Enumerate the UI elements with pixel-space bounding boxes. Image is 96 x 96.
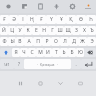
button[interactable]: И bbox=[44, 48, 52, 57]
button[interactable]: С bbox=[28, 48, 36, 57]
staticText: А bbox=[27, 38, 31, 45]
button[interactable]: Ц bbox=[8, 26, 16, 35]
button[interactable]: Я bbox=[12, 48, 20, 57]
button[interactable]: У bbox=[16, 26, 24, 35]
staticText: Е bbox=[35, 27, 38, 34]
staticText: Ә bbox=[12, 16, 16, 23]
button[interactable]: Ч bbox=[20, 48, 28, 57]
button[interactable]: !#1 bbox=[0, 59, 14, 69]
staticText: У bbox=[18, 27, 22, 34]
button[interactable]: Ь bbox=[60, 48, 68, 57]
button[interactable]: К bbox=[24, 26, 32, 35]
staticText: Д bbox=[72, 38, 76, 45]
button[interactable]: ? bbox=[14, 59, 24, 69]
button[interactable]: А bbox=[24, 37, 33, 46]
button[interactable]: Ғ bbox=[0, 15, 9, 24]
button[interactable]: Ю bbox=[76, 48, 84, 57]
button[interactable]: Ө bbox=[76, 15, 86, 24]
staticText: Ц bbox=[10, 27, 14, 34]
button[interactable]: Д bbox=[69, 37, 78, 46]
staticText: С bbox=[30, 49, 34, 56]
staticText: Ү bbox=[50, 16, 53, 23]
button[interactable]: Home bbox=[30, 71, 50, 96]
button[interactable]: Settings bbox=[64, 0, 80, 13]
staticText: Щ bbox=[65, 27, 71, 34]
staticText: Н bbox=[42, 27, 46, 34]
button[interactable]: Б bbox=[68, 48, 76, 57]
staticText: Э bbox=[90, 38, 94, 45]
button[interactable]: Н bbox=[40, 26, 48, 35]
staticText: Ю bbox=[78, 49, 83, 56]
staticText: Г bbox=[51, 27, 54, 34]
staticText: Б bbox=[70, 49, 74, 56]
button[interactable]: Stickers bbox=[16, 0, 32, 13]
button[interactable]: Switch keyboard bbox=[70, 71, 90, 96]
staticText: І bbox=[22, 16, 24, 23]
staticText: Ғ bbox=[40, 16, 43, 23]
staticText: Л bbox=[63, 38, 67, 45]
staticText: Ө bbox=[79, 16, 83, 23]
button[interactable]: Ң bbox=[27, 15, 36, 24]
button[interactable]: Э bbox=[87, 37, 96, 46]
button[interactable]: Л bbox=[60, 37, 69, 46]
button[interactable]: Enter bbox=[81, 59, 96, 69]
staticText: Р bbox=[45, 38, 49, 45]
staticText: Һ bbox=[89, 16, 93, 23]
button[interactable]: Emoji bbox=[0, 0, 16, 13]
staticText: И bbox=[46, 49, 50, 56]
button[interactable]: Щ bbox=[64, 26, 72, 35]
staticText: Ң bbox=[30, 16, 34, 23]
button[interactable]: Ф bbox=[0, 37, 8, 46]
staticText: К bbox=[26, 27, 30, 34]
button[interactable]: Ш bbox=[56, 26, 64, 35]
staticText: Қ bbox=[69, 16, 73, 23]
button[interactable]: П bbox=[33, 37, 42, 46]
button[interactable] bbox=[80, 0, 96, 13]
staticText: Ы bbox=[10, 38, 15, 45]
button[interactable]: З bbox=[72, 26, 80, 35]
button[interactable]: Backspace bbox=[84, 48, 96, 57]
staticText: !#1 bbox=[4, 62, 10, 67]
staticText: Ф bbox=[2, 38, 7, 45]
staticText: В bbox=[18, 38, 22, 45]
button[interactable]: Ү bbox=[46, 15, 56, 24]
staticText: Ж bbox=[80, 38, 85, 45]
button[interactable]: Hide keyboard bbox=[50, 71, 70, 96]
button[interactable]: Г bbox=[48, 26, 56, 35]
staticText: Х bbox=[83, 27, 86, 34]
staticText: . bbox=[75, 61, 77, 67]
button[interactable]: М bbox=[36, 48, 44, 57]
button[interactable]: Ы bbox=[8, 37, 16, 46]
button[interactable]: Р bbox=[42, 37, 51, 46]
button[interactable]: Ж bbox=[78, 37, 87, 46]
button[interactable]: І bbox=[18, 15, 27, 24]
staticText: Я bbox=[14, 49, 18, 56]
staticText: Ч bbox=[22, 49, 26, 56]
staticText: Ш bbox=[57, 27, 63, 34]
button[interactable]: Clipboard bbox=[32, 0, 48, 13]
button[interactable]: Т bbox=[52, 48, 60, 57]
button[interactable]: Recents bbox=[11, 71, 30, 96]
staticText: П bbox=[36, 38, 40, 45]
button[interactable]: Ъ bbox=[88, 26, 96, 35]
button[interactable]: Қазақша bbox=[24, 59, 71, 69]
staticText: Ғ bbox=[3, 16, 6, 23]
button[interactable]: Ғ bbox=[36, 15, 46, 24]
button[interactable]: Й bbox=[0, 26, 8, 35]
button[interactable]: В bbox=[16, 37, 24, 46]
button[interactable]: Ә bbox=[9, 15, 18, 24]
button[interactable]: Е bbox=[32, 26, 40, 35]
staticText: М bbox=[38, 49, 43, 56]
staticText: ? bbox=[18, 61, 20, 67]
button[interactable]: Х bbox=[80, 26, 88, 35]
button[interactable]: Ұ bbox=[56, 15, 66, 24]
button[interactable]: Shift bbox=[0, 48, 12, 57]
staticText: Ъ bbox=[90, 27, 94, 34]
button[interactable]: О bbox=[51, 37, 60, 46]
button[interactable]: Һ bbox=[86, 15, 96, 24]
staticText: Ь bbox=[62, 49, 66, 56]
button[interactable]: Қ bbox=[66, 15, 76, 24]
staticText: З bbox=[75, 27, 78, 34]
button[interactable]: Voice input bbox=[48, 0, 64, 13]
